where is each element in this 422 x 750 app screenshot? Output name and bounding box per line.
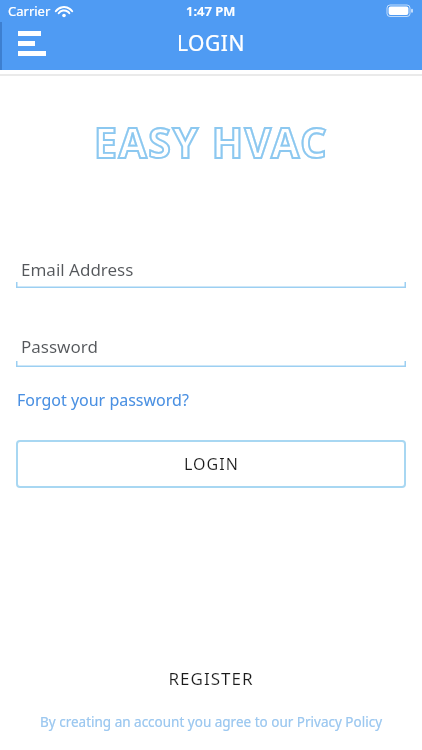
staticText: EASY HVAC [0, 114, 422, 170]
staticText: Password [21, 335, 98, 358]
staticText: Forgot your password? [17, 389, 189, 411]
staticText: REGISTER [0, 667, 422, 690]
staticText: Carrier [8, 2, 51, 20]
staticText: By creating an account you agree to our … [0, 713, 422, 731]
staticText: Email Address [21, 258, 134, 281]
staticText: 1:47 PM [186, 2, 236, 20]
staticText: LOGIN [184, 453, 239, 475]
staticText: LOGIN [177, 29, 245, 58]
